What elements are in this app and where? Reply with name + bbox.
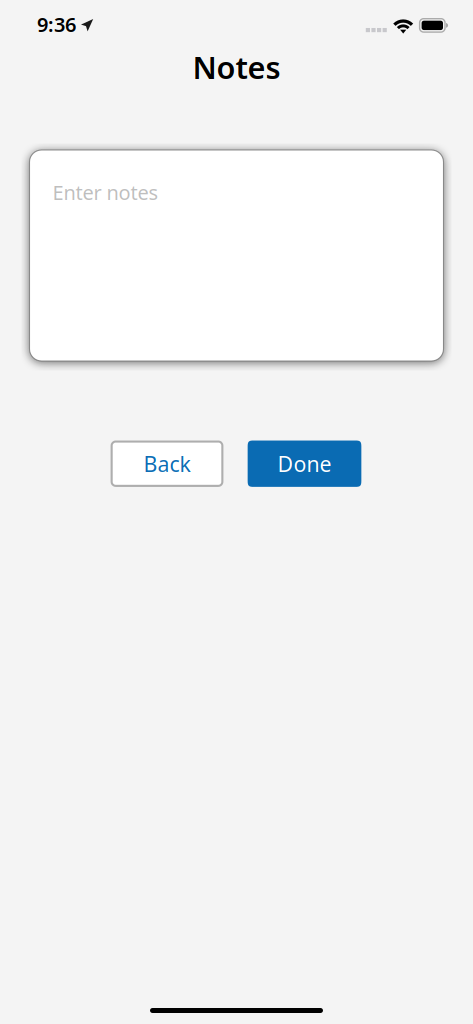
button[interactable]: Done <box>248 440 361 487</box>
staticText: 9:36 <box>37 11 76 38</box>
button[interactable]: Enter notes <box>29 150 443 361</box>
staticText: Enter notes <box>52 179 158 206</box>
staticText: Notes <box>192 47 280 87</box>
staticText: Back <box>143 449 190 478</box>
staticText: Done <box>277 449 331 478</box>
button[interactable]: Back <box>112 442 222 486</box>
